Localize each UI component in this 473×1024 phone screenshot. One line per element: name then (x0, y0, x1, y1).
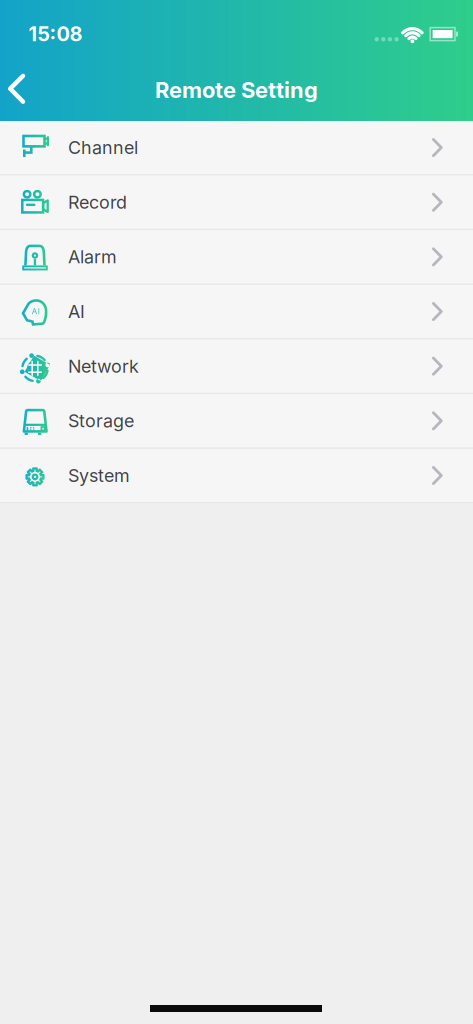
staticText: 15:08 (28, 22, 82, 46)
button[interactable]: Record (0, 176, 473, 230)
staticText: Storage (68, 410, 134, 432)
staticText: Network (68, 355, 139, 377)
staticText: Alarm (68, 246, 117, 268)
staticText: Remote Setting (155, 77, 318, 103)
button[interactable]: Alarm (0, 230, 473, 285)
staticText: System (68, 465, 130, 486)
staticText: Record (68, 191, 127, 213)
staticText: Channel (68, 137, 138, 158)
button[interactable]: Network (0, 340, 473, 394)
button[interactable]: System (0, 449, 473, 503)
button[interactable]: Back (0, 67, 39, 111)
button[interactable]: Channel (0, 121, 473, 176)
staticText: AI (68, 301, 85, 322)
button[interactable]: AI (0, 285, 473, 339)
button[interactable]: Storage (0, 394, 473, 449)
